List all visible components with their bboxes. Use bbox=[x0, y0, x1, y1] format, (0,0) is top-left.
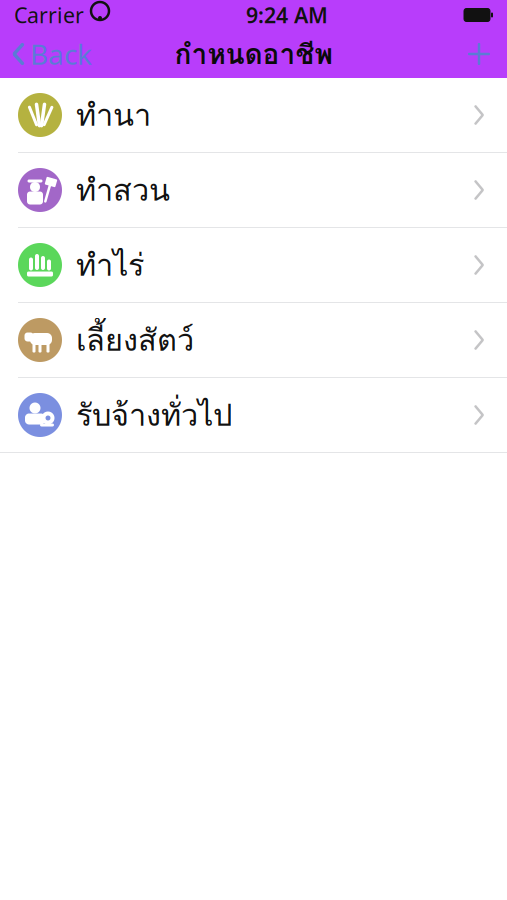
staticText: ทำสวน bbox=[76, 166, 170, 214]
staticText: Back bbox=[30, 35, 92, 73]
button[interactable]: Back bbox=[0, 30, 104, 78]
staticText: เลี้ยงสัตว์ bbox=[76, 316, 194, 364]
button[interactable]: Add bbox=[451, 30, 507, 78]
staticText: ทำไร่ bbox=[76, 241, 144, 289]
staticText: 9:24 AM bbox=[246, 1, 328, 29]
staticText: รับจ้างทั่วไป bbox=[76, 391, 232, 439]
staticText: ทำนา bbox=[76, 91, 151, 139]
button[interactable]: ทำสวน bbox=[0, 153, 507, 227]
button[interactable]: เลี้ยงสัตว์ bbox=[0, 303, 507, 377]
button[interactable]: ทำนา bbox=[0, 78, 507, 152]
staticText: Carrier bbox=[14, 1, 84, 29]
button[interactable]: ทำไร่ bbox=[0, 228, 507, 302]
button[interactable]: รับจ้างทั่วไป bbox=[0, 378, 507, 452]
staticText: กำหนดอาชีพ bbox=[174, 32, 332, 76]
